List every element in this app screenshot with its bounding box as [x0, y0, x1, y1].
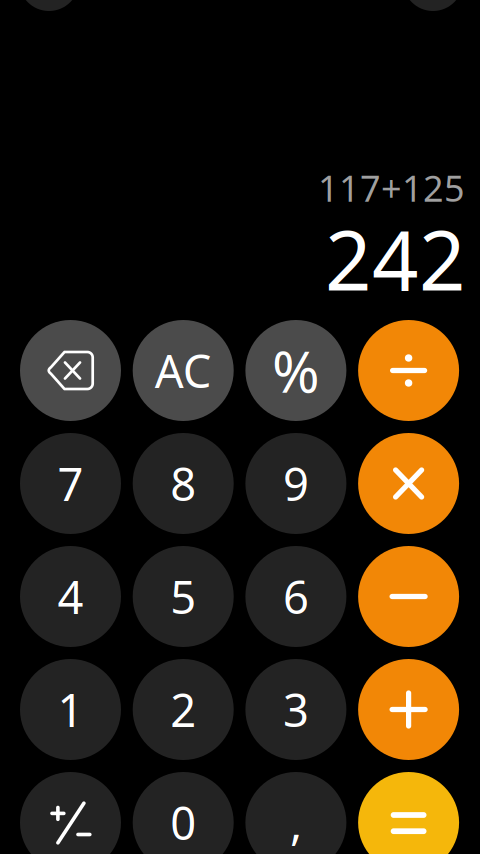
button[interactable]: 6 [245, 546, 346, 647]
button[interactable]: Multiply [358, 433, 459, 534]
button[interactable]: AC [133, 320, 234, 421]
staticText: 9 [283, 453, 309, 514]
staticText: 4 [57, 566, 83, 627]
staticText: AC [155, 340, 212, 401]
staticText: 242 [325, 205, 466, 313]
staticText: % [272, 332, 320, 408]
button[interactable]: 9 [245, 433, 346, 534]
staticText: 1 [57, 679, 83, 740]
button[interactable]: 5 [133, 546, 234, 647]
button[interactable]: 7 [20, 433, 121, 534]
button[interactable]: Equals [358, 772, 459, 854]
staticText: 2 [170, 679, 196, 740]
button[interactable]: 1 [20, 659, 121, 760]
button[interactable]: 0 [133, 772, 234, 854]
button[interactable]: Delete [20, 320, 121, 421]
staticText: 8 [170, 453, 196, 514]
staticText: 5 [170, 566, 196, 627]
button[interactable]: History [19, 0, 79, 11]
button[interactable]: 3 [245, 659, 346, 760]
staticText: 117+125 [318, 164, 465, 212]
button[interactable]: , [245, 772, 346, 854]
staticText: 7 [57, 453, 83, 514]
button[interactable]: 8 [133, 433, 234, 534]
button[interactable]: Toggle sign [20, 772, 121, 854]
staticText: 6 [283, 566, 309, 627]
button[interactable]: 2 [133, 659, 234, 760]
button[interactable]: Add [358, 659, 459, 760]
button[interactable]: % [245, 320, 346, 421]
button[interactable]: More [403, 0, 463, 11]
staticText: 0 [170, 792, 196, 853]
staticText: 3 [283, 679, 309, 740]
button[interactable]: 4 [20, 546, 121, 647]
button[interactable]: Subtract [358, 546, 459, 647]
staticText: , [290, 792, 302, 853]
button[interactable]: Divide [358, 320, 459, 421]
